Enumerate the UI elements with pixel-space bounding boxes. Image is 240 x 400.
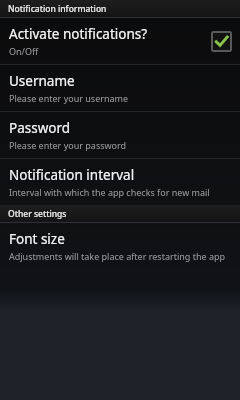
staticText: Font size — [9, 230, 65, 248]
button[interactable]: Activate notifications? — [0, 18, 240, 64]
button[interactable]: Username — [0, 65, 240, 111]
staticText: Adjustments will take place after restar… — [9, 250, 226, 262]
staticText: Activate notifications? — [9, 25, 148, 43]
button[interactable]: Font size — [0, 223, 240, 269]
button[interactable]: Password — [0, 112, 240, 158]
staticText: Password — [9, 119, 71, 137]
staticText: Interval with which the app checks for n… — [9, 186, 210, 198]
staticText: Notification information — [8, 3, 107, 15]
staticText: Please enter your username — [9, 92, 129, 104]
staticText: Username — [9, 72, 75, 90]
staticText: Notification interval — [9, 166, 135, 184]
staticText: Please enter your password — [9, 139, 127, 151]
button[interactable]: Activate notifications toggle — [211, 31, 232, 52]
staticText: On/Off — [9, 45, 39, 57]
button[interactable]: Notification interval — [0, 159, 240, 205]
staticText: Other settings — [8, 208, 67, 220]
